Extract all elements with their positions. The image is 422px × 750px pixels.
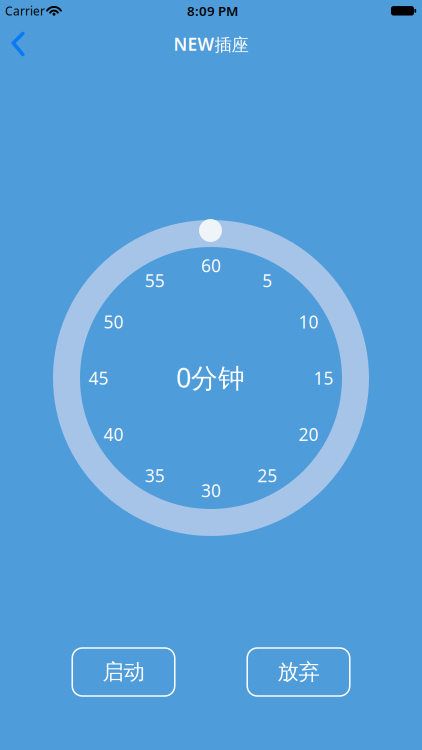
staticText: 20	[298, 423, 318, 446]
button[interactable]: Back	[0, 0, 40, 64]
staticText: 启动	[102, 659, 144, 685]
staticText: 0分钟	[176, 360, 245, 395]
staticText: NEW插座	[173, 32, 248, 55]
staticText: 45	[88, 366, 108, 389]
staticText: 10	[298, 310, 318, 333]
staticText: 40	[104, 423, 124, 446]
staticText: 50	[104, 310, 124, 333]
staticText: 8:09 PM	[187, 2, 238, 20]
staticText: Carrier	[5, 3, 45, 19]
button[interactable]: 放弃	[247, 648, 350, 696]
staticText: 30	[201, 479, 221, 502]
staticText: 35	[145, 464, 165, 487]
staticText: 15	[313, 366, 333, 389]
staticText: 25	[257, 464, 277, 487]
staticText: 55	[145, 269, 165, 292]
staticText: 60	[201, 254, 221, 277]
button[interactable]: 启动	[72, 648, 175, 696]
staticText: 5	[262, 269, 272, 292]
staticText: 放弃	[277, 659, 319, 685]
